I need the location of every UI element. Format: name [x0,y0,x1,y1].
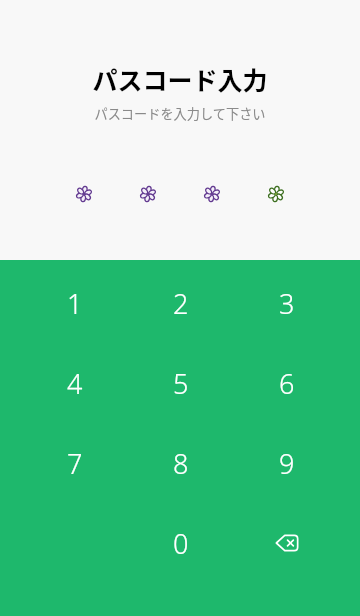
button[interactable]: 5 [128,343,234,423]
button[interactable]: 7 [22,423,128,503]
staticText: 4 [67,365,83,402]
staticText: 6 [279,365,295,402]
staticText: 0 [173,525,189,562]
button[interactable]: 1 [22,263,128,343]
button[interactable]: 0 [128,503,234,583]
staticText: 1 [67,285,83,322]
button[interactable]: 3 [234,263,340,343]
staticText: パスコードを入力して下さい [94,104,266,123]
button[interactable]: 9 [234,423,340,503]
button[interactable]: 8 [128,423,234,503]
staticText: 8 [173,445,189,482]
button[interactable]: 4 [22,343,128,423]
staticText: 9 [279,445,295,482]
staticText: 5 [173,365,189,402]
staticText: パスコード入力 [92,61,268,97]
button[interactable]: Delete [234,503,340,583]
button[interactable]: 6 [234,343,340,423]
button[interactable]: 2 [128,263,234,343]
staticText: 2 [173,285,189,322]
staticText: 3 [279,285,295,322]
staticText: 7 [67,445,83,482]
